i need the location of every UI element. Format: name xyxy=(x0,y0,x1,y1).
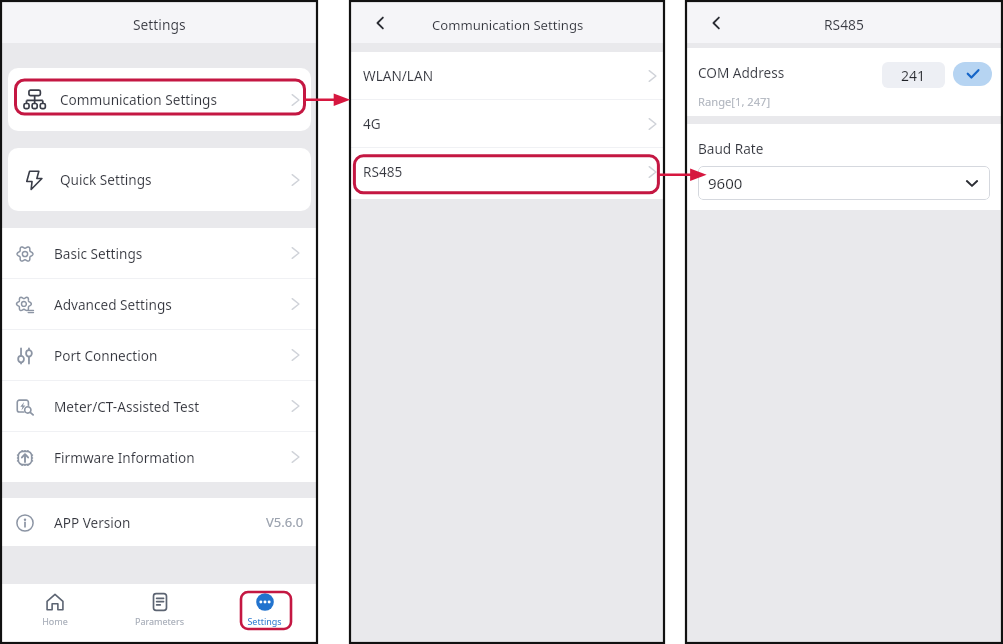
staticText: Parameters xyxy=(135,615,184,627)
button[interactable]: RS485 xyxy=(351,148,664,195)
button[interactable]: Home xyxy=(2,584,107,642)
button[interactable]: Back xyxy=(699,6,733,40)
staticText: 4G xyxy=(363,114,381,133)
staticText: Settings xyxy=(247,615,282,627)
staticText: Basic Settings xyxy=(54,244,143,263)
staticText: Meter/CT-Assisted Test xyxy=(54,397,200,416)
staticText: V5.6.0 xyxy=(266,513,304,531)
button[interactable]: 241 xyxy=(882,62,945,88)
staticText: Advanced Settings xyxy=(54,295,172,314)
button[interactable]: Advanced Settings xyxy=(2,279,317,329)
button[interactable]: WLAN/LAN xyxy=(351,52,664,99)
button[interactable]: Firmware Information xyxy=(2,432,317,482)
button[interactable]: Confirm xyxy=(953,62,992,86)
staticText: Communication Settings xyxy=(432,16,584,34)
button[interactable]: Back xyxy=(363,6,397,40)
button[interactable]: 9600 xyxy=(698,166,990,200)
staticText: APP Version xyxy=(54,513,131,532)
button[interactable]: Settings xyxy=(212,584,317,642)
staticText: 9600 xyxy=(708,173,743,193)
button[interactable]: Quick Settings xyxy=(8,148,311,211)
staticText: Communication Settings xyxy=(60,90,217,109)
button[interactable]: Communication Settings xyxy=(8,68,311,131)
staticText: Range[1, 247] xyxy=(698,94,771,109)
staticText: Baud Rate xyxy=(698,139,764,158)
button[interactable]: Port Connection xyxy=(2,330,317,380)
button[interactable]: APP Version xyxy=(2,498,317,546)
staticText: 241 xyxy=(901,66,926,85)
button[interactable]: Parameters xyxy=(107,584,212,642)
button[interactable]: Meter/CT-Assisted Test xyxy=(2,381,317,431)
staticText: Quick Settings xyxy=(60,170,152,189)
staticText: Port Connection xyxy=(54,346,158,365)
button[interactable]: 4G xyxy=(351,100,664,147)
staticText: RS485 xyxy=(824,15,864,34)
staticText: Home xyxy=(42,615,68,627)
staticText: Firmware Information xyxy=(54,448,195,467)
button[interactable]: Basic Settings xyxy=(2,228,317,278)
staticText: COM Address xyxy=(698,63,785,82)
staticText: Settings xyxy=(133,15,186,34)
staticText: RS485 xyxy=(363,162,403,181)
staticText: WLAN/LAN xyxy=(363,66,433,85)
